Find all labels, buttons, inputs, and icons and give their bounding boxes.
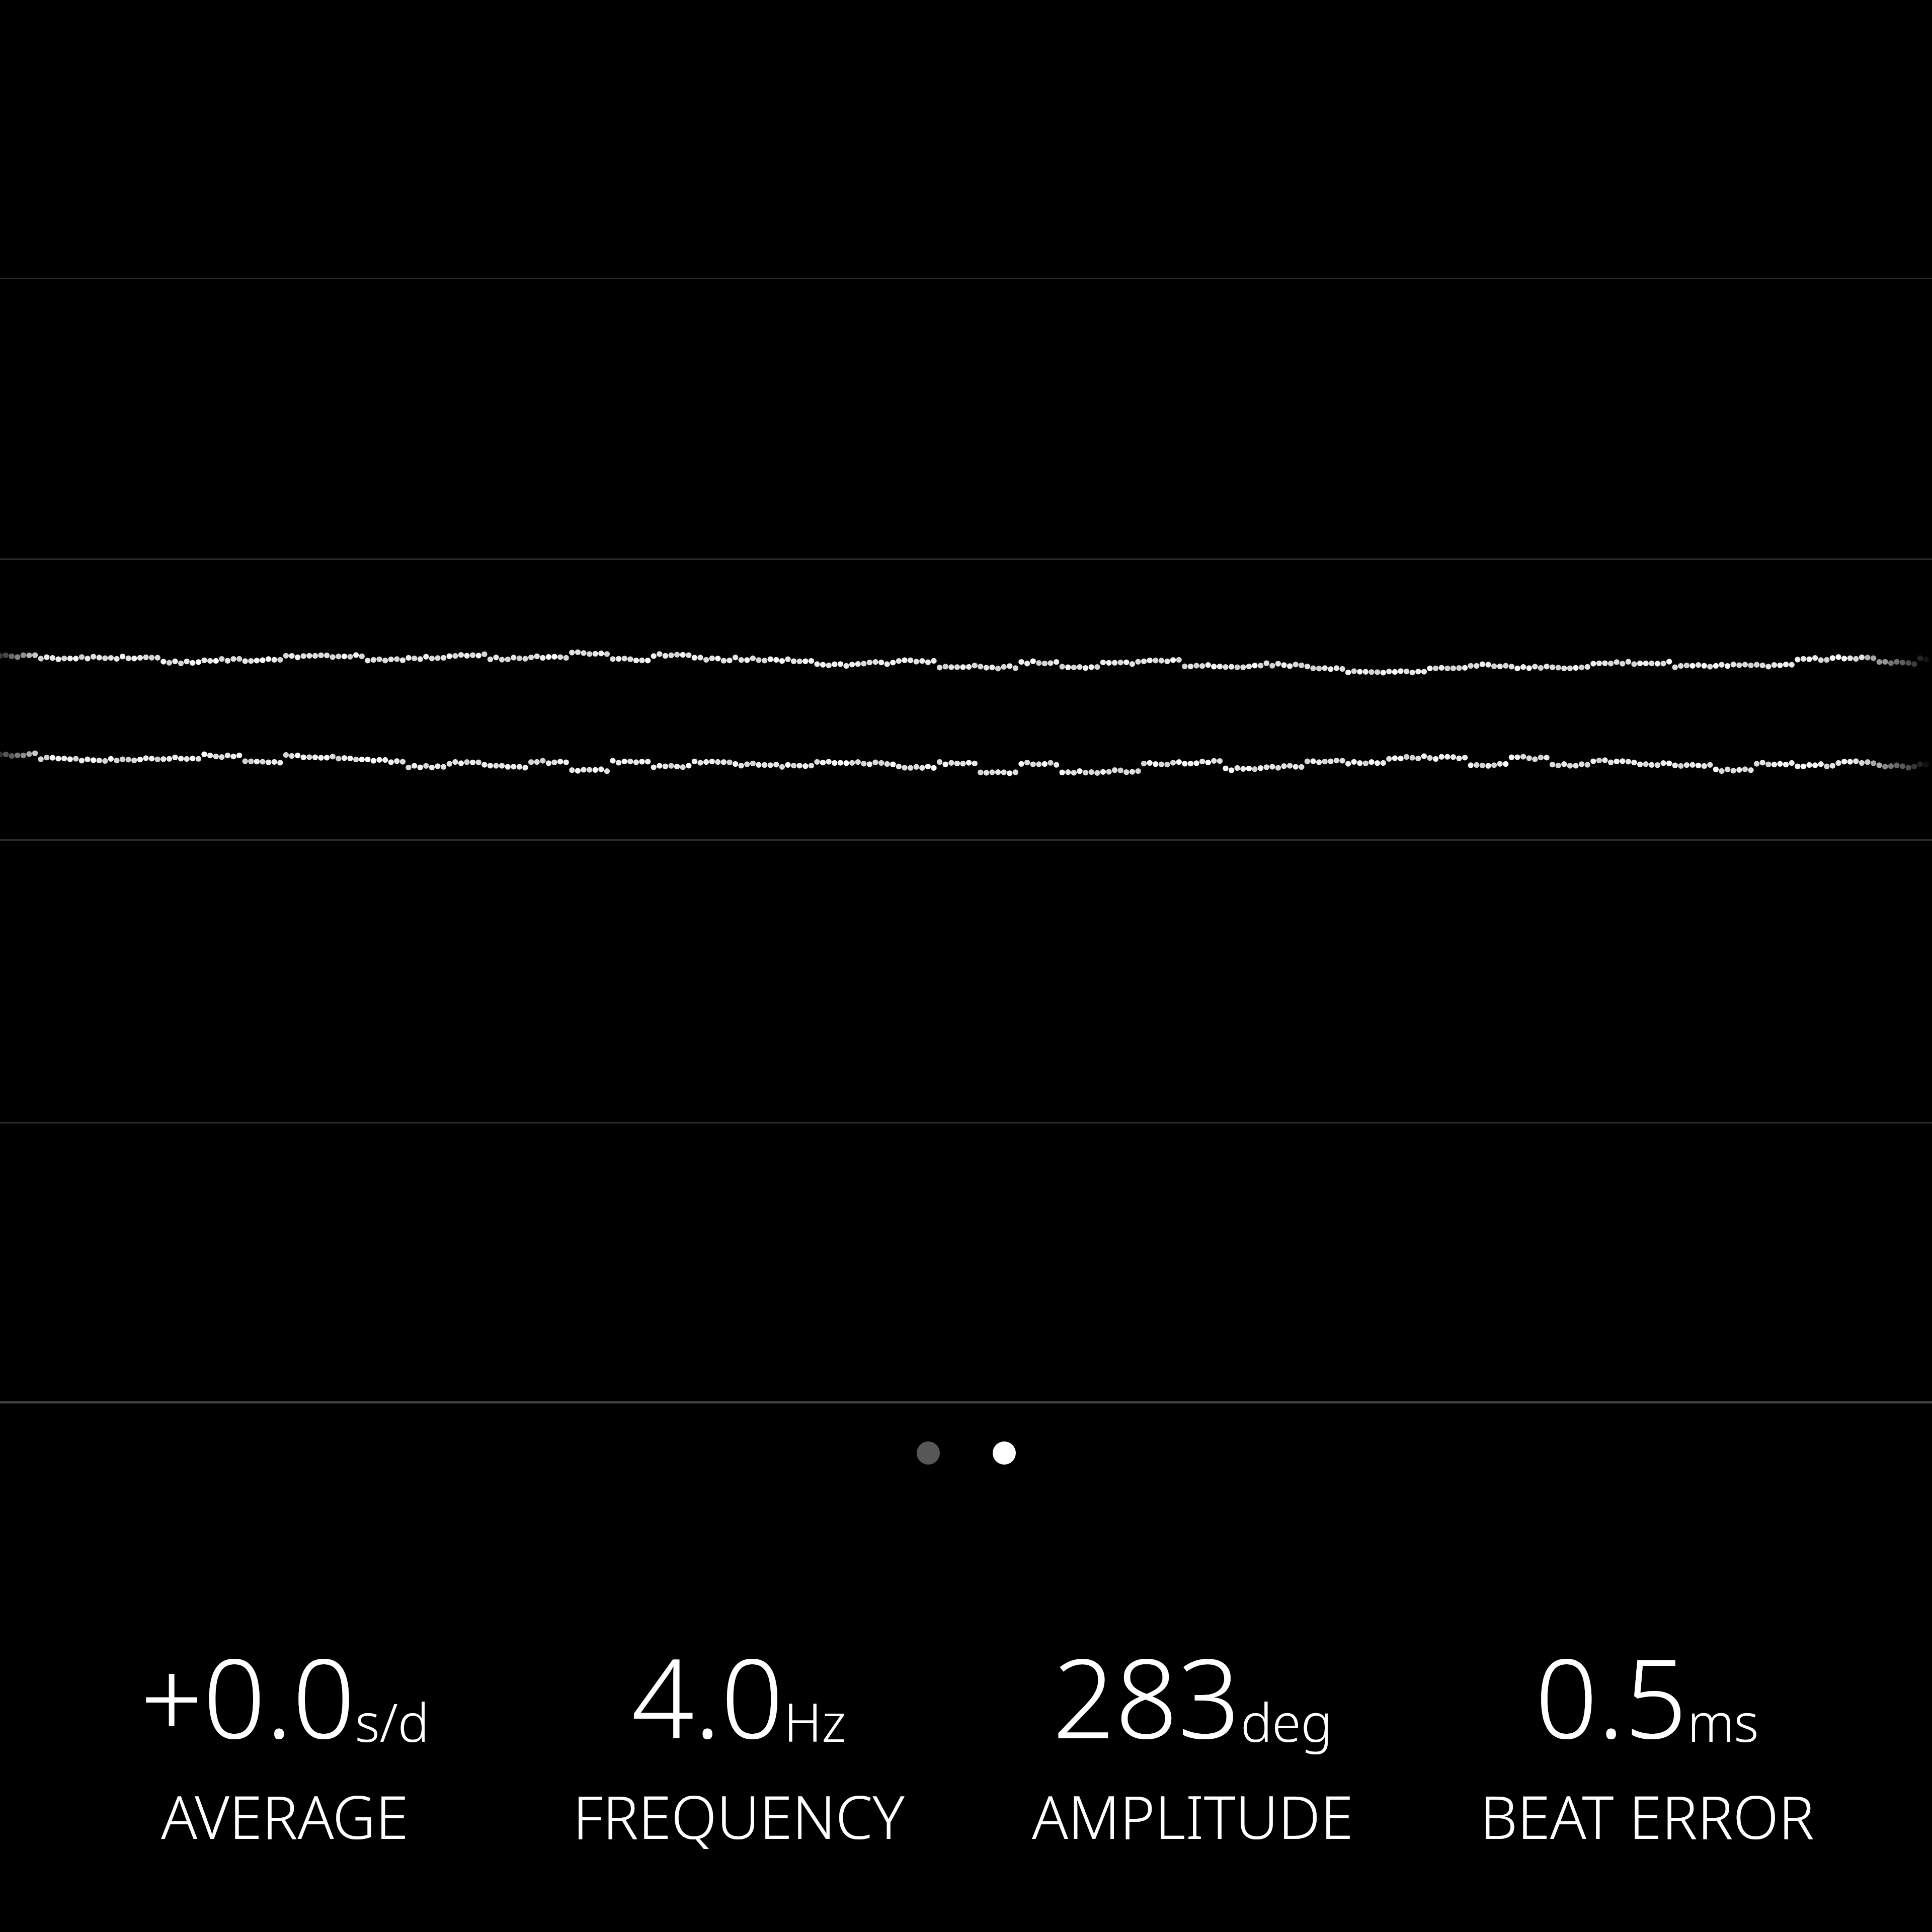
button[interactable]: Page 2, selected: [993, 1441, 1016, 1465]
button[interactable]: 4.0: [512, 1621, 965, 1857]
staticText: 283: [1053, 1621, 1241, 1770]
staticText: 0.5: [1535, 1621, 1687, 1770]
staticText: Hz: [784, 1686, 846, 1757]
staticText: BEAT ERROR: [1480, 1776, 1814, 1857]
staticText: deg: [1241, 1686, 1333, 1757]
staticText: ms: [1687, 1686, 1759, 1757]
staticText: FREQUENCY: [573, 1776, 905, 1857]
staticText: AMPLITUDE: [1032, 1776, 1353, 1857]
staticText: 4.0: [631, 1621, 784, 1770]
button[interactable]: Page 1: [917, 1441, 940, 1465]
staticText: AVERAGE: [161, 1776, 409, 1857]
button[interactable]: +0.0: [58, 1621, 512, 1857]
staticText: s/d: [355, 1686, 430, 1757]
button[interactable]: 0.5: [1420, 1621, 1874, 1857]
staticText: +0.0: [140, 1621, 355, 1770]
button[interactable]: 283: [965, 1621, 1420, 1857]
